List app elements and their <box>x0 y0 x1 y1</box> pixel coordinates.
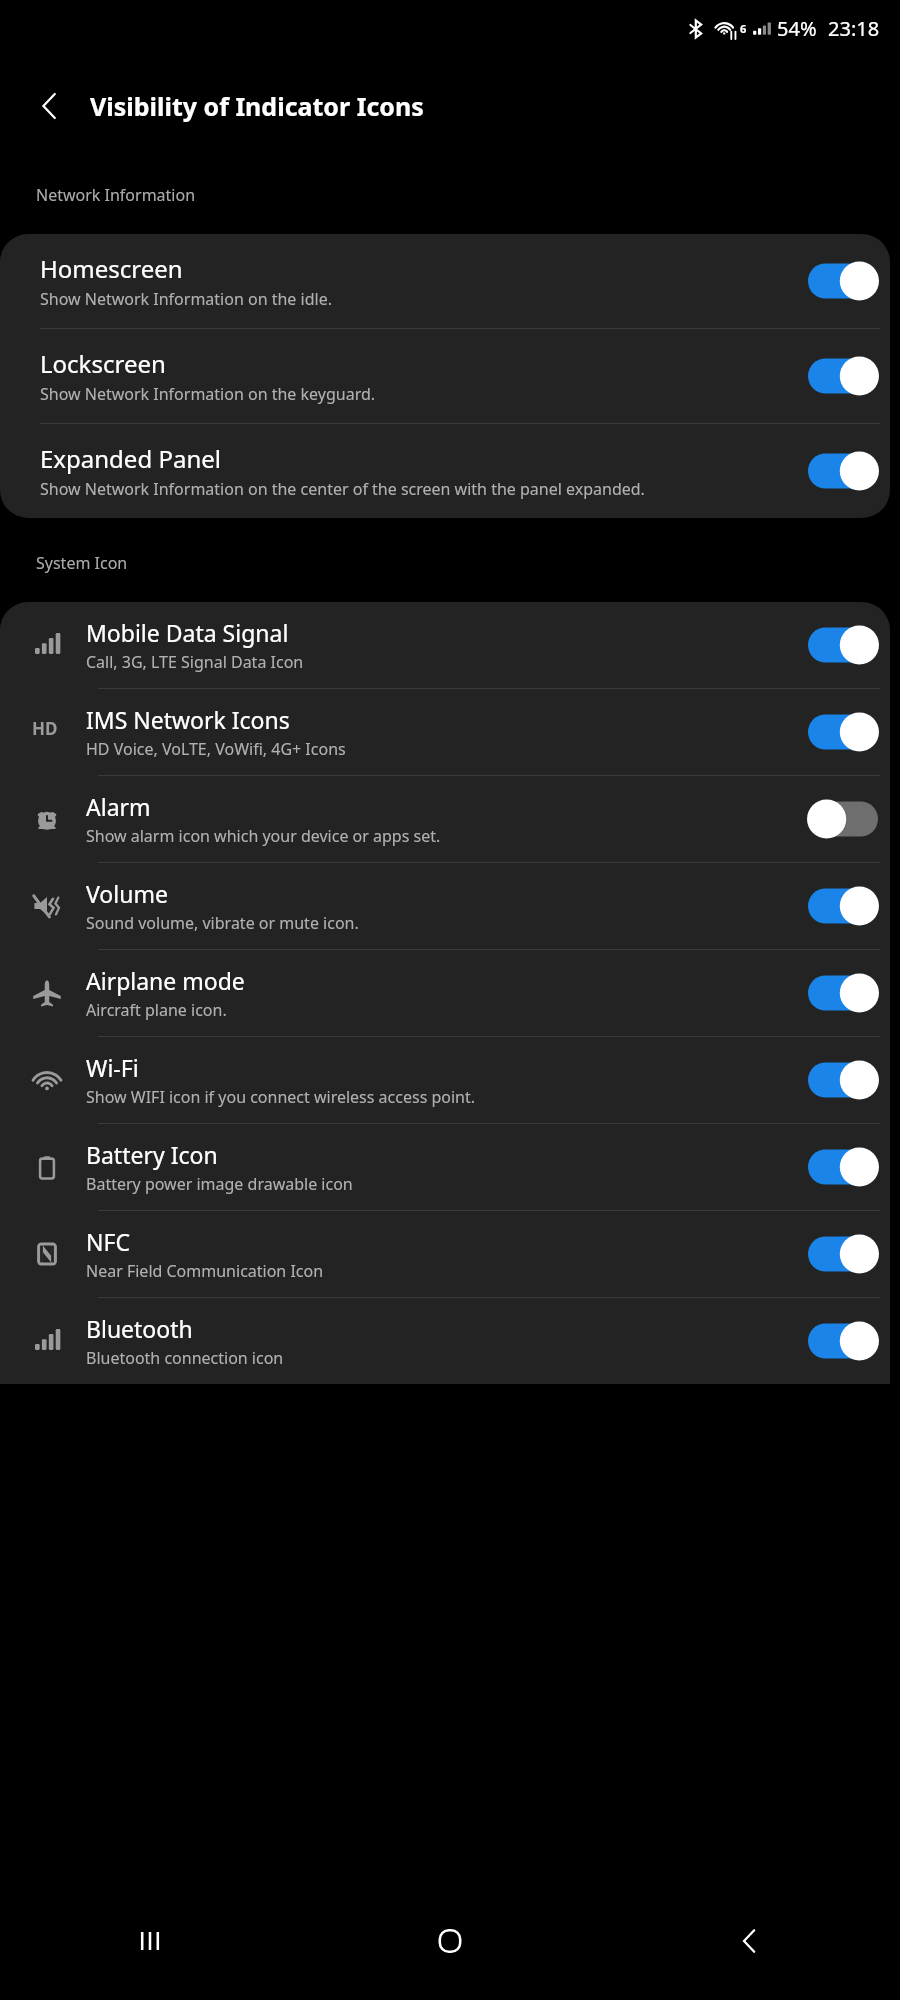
staticText: Visibility of Indicator Icons <box>90 89 424 123</box>
button[interactable]: Toggle, on <box>808 1234 878 1274</box>
staticText: Network Information <box>36 184 196 206</box>
button[interactable]: Volume <box>0 863 890 949</box>
button[interactable]: Toggle, on <box>808 973 878 1013</box>
staticText: 23:18 <box>828 15 880 42</box>
button[interactable]: Toggle, off <box>808 799 878 839</box>
staticText: Battery power image drawable icon <box>86 1173 353 1195</box>
button[interactable]: Lockscreen <box>0 329 890 423</box>
button[interactable]: Back <box>22 78 78 134</box>
staticText: NFC <box>86 1226 130 1257</box>
button[interactable]: Home <box>300 1882 600 2000</box>
button[interactable]: Airplane mode <box>0 950 890 1036</box>
staticText: Show Network Information on the center o… <box>40 478 645 500</box>
staticText: Alarm <box>86 791 151 822</box>
staticText: Show alarm icon which your device or app… <box>86 825 441 847</box>
staticText: Call, 3G, LTE Signal Data Icon <box>86 651 304 673</box>
staticText: Expanded Panel <box>40 442 221 475</box>
staticText: 54% <box>777 15 817 42</box>
button[interactable]: HD+ <box>0 689 890 775</box>
staticText: Show Network Information on the keyguard… <box>40 383 376 405</box>
staticText: Bluetooth connection icon <box>86 1347 284 1369</box>
staticText: Airplane mode <box>86 965 245 996</box>
staticText: Battery Icon <box>86 1139 218 1170</box>
button[interactable]: Toggle, on <box>808 451 878 491</box>
button[interactable]: Battery Icon <box>0 1124 890 1210</box>
button[interactable]: Toggle, on <box>808 1060 878 1100</box>
staticText: Sound volume, vibrate or mute icon. <box>86 912 359 934</box>
staticText: Bluetooth <box>86 1313 193 1344</box>
button[interactable]: Expanded Panel <box>0 424 890 518</box>
staticText: 6 <box>740 21 747 36</box>
button[interactable]: Toggle, on <box>808 886 878 926</box>
button[interactable]: Mobile Data Signal <box>0 602 890 688</box>
staticText: Show WIFI icon if you connect wireless a… <box>86 1086 476 1108</box>
button[interactable]: Toggle, on <box>808 1321 878 1361</box>
button[interactable]: Homescreen <box>0 234 890 328</box>
button[interactable]: Back <box>600 1882 900 2000</box>
button[interactable]: Toggle, on <box>808 712 878 752</box>
button[interactable]: Toggle, on <box>808 261 878 301</box>
button[interactable]: Bluetooth <box>0 1298 890 1384</box>
button[interactable]: Wi-Fi <box>0 1037 890 1123</box>
button[interactable]: Recents <box>0 1882 300 2000</box>
staticText: HD+ <box>32 717 62 747</box>
button[interactable]: Toggle, on <box>808 356 878 396</box>
button[interactable]: Toggle, on <box>808 1147 878 1187</box>
staticText: System Icon <box>36 552 128 574</box>
staticText: Show Network Information on the idle. <box>40 288 332 310</box>
button[interactable]: NFC <box>0 1211 890 1297</box>
staticText: Aircraft plane icon. <box>86 999 227 1021</box>
button[interactable]: Alarm <box>0 776 890 862</box>
staticText: Mobile Data Signal <box>86 617 289 648</box>
staticText: HD Voice, VoLTE, VoWifi, 4G+ Icons <box>86 738 346 760</box>
staticText: Homescreen <box>40 252 183 285</box>
staticText: Volume <box>86 878 168 909</box>
staticText: Lockscreen <box>40 347 166 380</box>
staticText: Near Field Communication Icon <box>86 1260 324 1282</box>
staticText: Wi-Fi <box>86 1052 139 1083</box>
staticText: IMS Network Icons <box>86 704 290 735</box>
button[interactable]: Toggle, on <box>808 625 878 665</box>
